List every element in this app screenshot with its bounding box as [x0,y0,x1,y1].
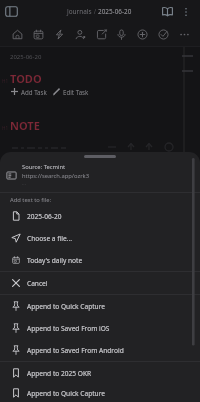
staticText: Append to Quick Capture [27,302,105,311]
button[interactable]: Quick capture [53,28,66,41]
button[interactable]: Append to Saved From Android [0,339,200,361]
button[interactable]: Cancel [0,272,200,294]
button[interactable]: More options [179,5,193,19]
staticText: 2025-06-20 [10,53,42,61]
staticText: 2025-06-20 [98,7,132,16]
staticText: 2025-06-20 [27,212,62,221]
staticText: https://search.app/ozrk3 [22,172,89,180]
button[interactable]: Voice [115,28,128,41]
button[interactable]: Contacts [74,28,87,41]
staticText: / [92,7,98,16]
staticText: ... [22,180,27,187]
staticText: H1 [2,78,9,84]
staticText: Choose a file... [27,234,72,243]
button[interactable]: Add Task [10,87,19,96]
button[interactable]: More [178,28,191,41]
button[interactable]: Tasks [157,28,170,41]
button[interactable]: Append to 2025 OKR [0,362,200,384]
button[interactable]: Edit Task [52,87,61,96]
staticText: Append to Quick Capture [27,389,105,398]
button[interactable]: New note [95,28,108,41]
button[interactable]: Reading mode [159,3,176,20]
staticText: Cancel [27,279,48,288]
staticText: NOTE [10,118,40,133]
button[interactable]: 2025-06-20 [0,205,200,227]
staticText: Edit Task [63,88,89,96]
staticText: Append to Saved From iOS [27,324,110,333]
staticText: TODO [10,71,42,86]
button[interactable]: Calendar [32,28,45,41]
staticText: Add text to file: [10,196,52,204]
button[interactable]: Toggle sidebar [3,3,20,20]
button[interactable]: Home [11,28,24,41]
button[interactable]: Append to Saved From iOS [0,317,200,339]
staticText: Append to 2025 OKR [27,369,92,378]
staticText: H1 [2,125,9,131]
button[interactable]: Append to Quick Capture [0,384,200,402]
staticText: Today's daily note [27,256,83,265]
button[interactable]: Append to Quick Capture [0,295,200,317]
staticText: Append to Saved From Android [27,346,124,355]
staticText: Source: Tecmint [22,163,66,171]
staticText: Add Task [21,88,47,96]
staticText: Journals [67,7,92,16]
button[interactable]: Add [136,28,149,41]
button[interactable]: Today's daily note [0,249,200,271]
button[interactable]: Choose a file... [0,227,200,249]
